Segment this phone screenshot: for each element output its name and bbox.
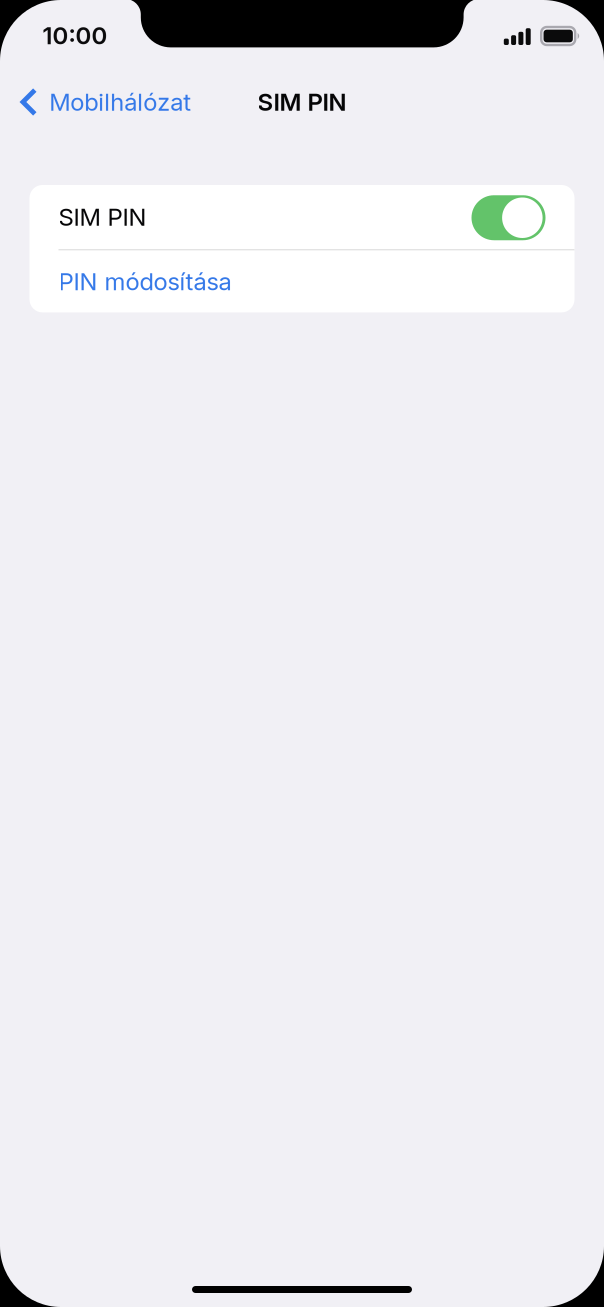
button[interactable]: PIN módosítása xyxy=(29,250,574,312)
staticText: 10:00 xyxy=(42,21,107,50)
staticText: Mobilhálózat xyxy=(49,87,191,116)
staticText: PIN módosítása xyxy=(58,267,231,296)
button[interactable]: SIM PIN xyxy=(29,185,574,249)
staticText: SIM PIN xyxy=(58,202,146,231)
button[interactable]: Mobilhálózat xyxy=(0,80,201,123)
button[interactable]: SIM PIN kapcsoló, be xyxy=(471,194,545,240)
staticText: SIM PIN xyxy=(257,87,346,116)
